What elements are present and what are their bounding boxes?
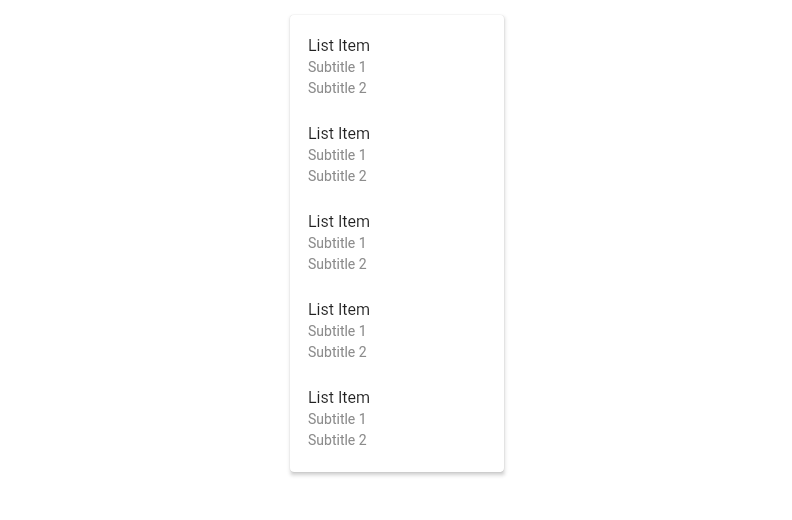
button[interactable]: List Item	[290, 388, 504, 472]
staticText: Subtitle 2	[308, 256, 367, 272]
staticText: Subtitle 1	[308, 235, 367, 251]
staticText: Subtitle 1	[308, 147, 367, 163]
button[interactable]: List Item	[290, 300, 504, 388]
button[interactable]: List Item	[290, 124, 504, 212]
staticText: List Item	[308, 124, 371, 143]
button[interactable]: List Item	[290, 36, 504, 124]
staticText: Subtitle 1	[308, 59, 367, 75]
staticText: Subtitle 2	[308, 344, 367, 360]
staticText: List Item	[308, 388, 371, 407]
button[interactable]: List Item	[290, 212, 504, 300]
staticText: List Item	[308, 36, 371, 55]
staticText: List Item	[308, 300, 371, 319]
staticText: Subtitle 2	[308, 432, 367, 448]
staticText: List Item	[308, 212, 371, 231]
staticText: Subtitle 1	[308, 323, 367, 339]
staticText: Subtitle 2	[308, 168, 367, 184]
staticText: Subtitle 1	[308, 411, 367, 427]
staticText: Subtitle 2	[308, 80, 367, 96]
